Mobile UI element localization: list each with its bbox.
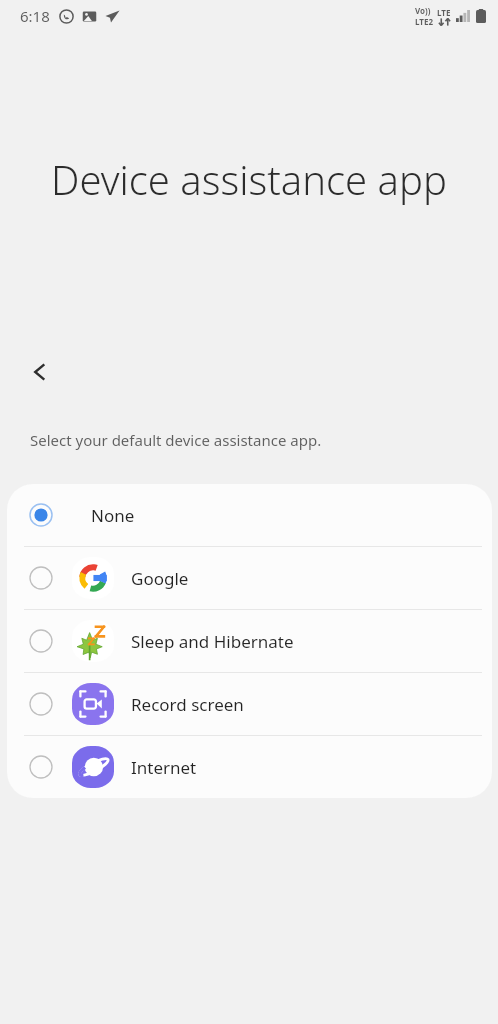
staticText: Google bbox=[131, 567, 189, 590]
button[interactable]: Record screen bbox=[7, 673, 492, 735]
staticText: None bbox=[91, 504, 135, 527]
staticText: 6:18 bbox=[20, 6, 50, 26]
staticText: Device assistance app bbox=[30, 152, 468, 206]
staticText: Internet bbox=[131, 756, 197, 779]
button[interactable]: None bbox=[7, 484, 492, 546]
staticText: Sleep and Hibernate bbox=[131, 630, 294, 653]
button[interactable]: Internet bbox=[7, 736, 492, 798]
staticText: LTE bbox=[437, 7, 451, 18]
staticText: LTE2 bbox=[415, 16, 433, 27]
staticText: Vo)) bbox=[415, 5, 431, 16]
staticText: Select your default device assistance ap… bbox=[30, 430, 322, 450]
button[interactable]: Sleep and Hibernate bbox=[7, 610, 492, 672]
staticText: Record screen bbox=[131, 693, 244, 716]
button[interactable]: Google bbox=[7, 547, 492, 609]
button[interactable]: Back bbox=[17, 349, 63, 395]
